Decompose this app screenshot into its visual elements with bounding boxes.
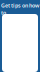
staticText: Get tips on how to [1,2,39,16]
